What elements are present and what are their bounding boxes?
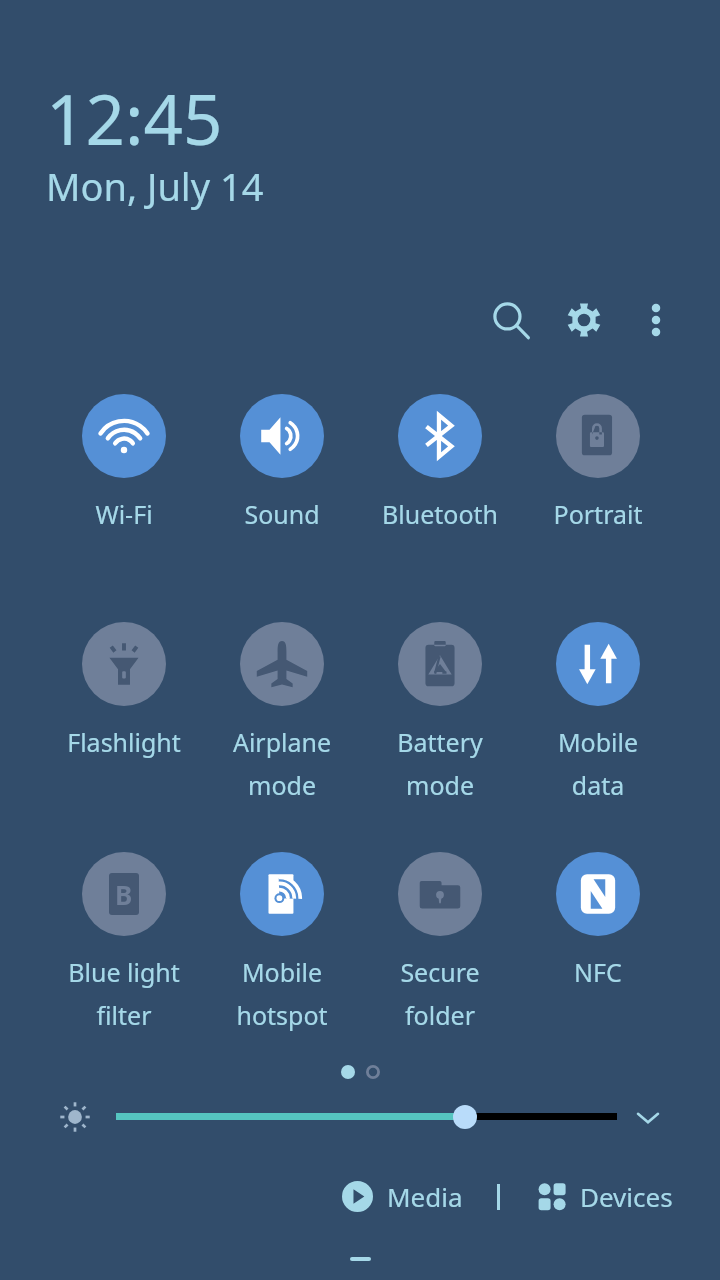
button[interactable]: Mobile data (519, 622, 677, 802)
button[interactable]: Secure folder (361, 852, 519, 1032)
button[interactable]: Wi-Fi (45, 394, 203, 531)
button[interactable]: Portrait (519, 394, 677, 531)
staticText: Media (387, 1179, 463, 1214)
button[interactable]: Settings (554, 290, 614, 350)
staticText: Portrait (519, 497, 677, 531)
button[interactable]: Brightness (59, 1101, 91, 1133)
button[interactable]: Mobile hotspot (203, 852, 361, 1032)
staticText: Sound (203, 497, 361, 531)
button[interactable]: Battery mode (361, 622, 519, 802)
button[interactable]: Flashlight (45, 622, 203, 759)
staticText: Wi-Fi (45, 497, 203, 531)
staticText: Bluetooth (361, 497, 519, 531)
button[interactable]: NFC (519, 852, 677, 989)
staticText: Flashlight (45, 725, 203, 759)
staticText: Airplane mode (203, 725, 361, 802)
button[interactable]: More options (626, 290, 686, 350)
staticText: Mobile data (519, 725, 677, 802)
staticText: Secure folder (361, 955, 519, 1032)
button[interactable]: Brightness level (116, 1097, 617, 1137)
staticText: NFC (519, 955, 677, 989)
staticText: Devices (580, 1179, 673, 1214)
button[interactable]: Sound (203, 394, 361, 531)
button[interactable]: B (45, 852, 203, 1032)
button[interactable]: Bluetooth (361, 394, 519, 531)
staticText: Mobile hotspot (203, 955, 361, 1032)
button[interactable]: Media (336, 1171, 469, 1222)
staticText: Blue light filter (45, 955, 203, 1032)
staticText: 12:45 (46, 71, 223, 165)
button[interactable]: Devices (532, 1171, 679, 1222)
button[interactable]: Expand (628, 1097, 668, 1137)
button[interactable]: Page 1 (337, 1061, 359, 1083)
button[interactable]: Airplane mode (203, 622, 361, 802)
staticText: B (115, 877, 133, 912)
button[interactable]: Search (482, 291, 542, 351)
button[interactable]: Page 2 (362, 1061, 384, 1083)
staticText: Battery mode (361, 725, 519, 802)
staticText: Mon, July 14 (46, 160, 264, 212)
